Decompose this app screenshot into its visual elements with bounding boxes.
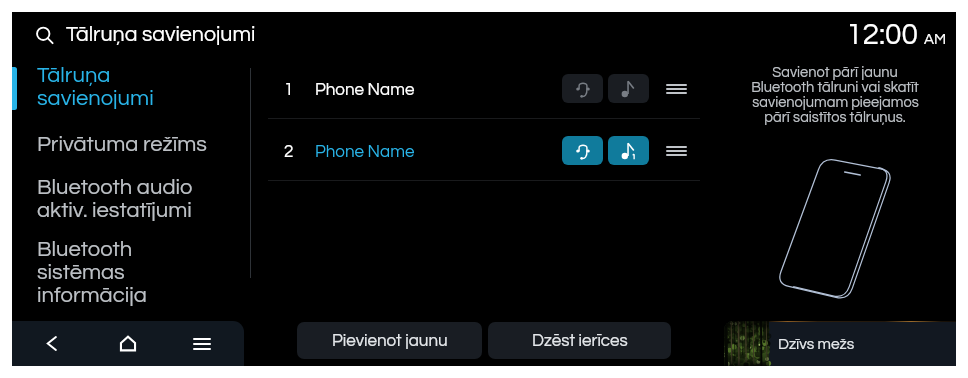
staticText: Bluetooth audio [37, 176, 193, 199]
button[interactable]: 1 [268, 57, 700, 118]
button[interactable]: Pievienot jaunu [297, 322, 482, 359]
button[interactable]: Search [25, 24, 65, 48]
staticText: aktiv. iestatījumi [37, 199, 192, 222]
staticText: Pievienot jaunu [332, 332, 448, 350]
button[interactable]: Bluetooth audio [22, 176, 237, 222]
button[interactable]: More options [658, 133, 694, 169]
staticText: Dzēst ierīces [532, 332, 628, 350]
staticText: Tālruņa savienojumi [66, 23, 256, 45]
button[interactable]: Tālruņa [22, 64, 237, 110]
staticText: Bluetooth [37, 238, 133, 261]
button[interactable]: Media audio [608, 136, 649, 165]
staticText: informācija [37, 284, 147, 307]
staticText: AM [924, 32, 947, 47]
button[interactable]: Dzīvs mežs [724, 321, 956, 366]
staticText: Phone Name [315, 143, 415, 161]
button[interactable]: Bluetooth [22, 238, 237, 307]
staticText: Savienot pārī jaunu [772, 65, 898, 80]
staticText: Bluetooth tālruni vai skatīt [751, 80, 919, 95]
button[interactable]: Menu [164, 321, 240, 366]
button[interactable]: Dzēst ierīces [488, 322, 671, 359]
staticText: Tālruņa [37, 64, 111, 87]
button[interactable]: Phone audio [562, 136, 603, 165]
staticText: 12:00 [846, 19, 919, 50]
staticText: Privātuma režīms [37, 133, 207, 156]
staticText: savienojumi [37, 87, 154, 110]
button[interactable]: 2 [268, 119, 700, 180]
button[interactable]: More options [658, 71, 694, 107]
staticText: Phone Name [315, 81, 415, 99]
button[interactable]: Back [12, 321, 91, 366]
button[interactable]: Phone audio [562, 74, 603, 103]
button[interactable]: Privātuma režīms [22, 133, 237, 156]
staticText: 2 [284, 143, 294, 161]
button[interactable]: Media audio [608, 74, 649, 103]
staticText: Dzīvs mežs [778, 336, 855, 352]
staticText: pārī saistītos tālruņus. [764, 110, 906, 125]
staticText: 1 [284, 81, 294, 99]
button[interactable]: Home [91, 321, 164, 366]
staticText: savienojumam pieejamos [752, 95, 919, 110]
staticText: sistēmas [37, 261, 125, 284]
